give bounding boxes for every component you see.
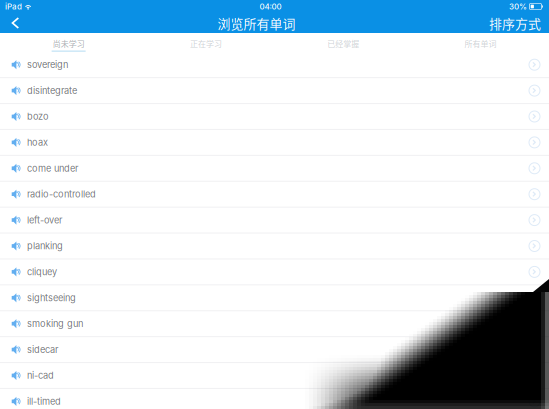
button[interactable]: Back [0, 13, 24, 33]
button[interactable]: Play radio-controlled [11, 182, 20, 207]
button[interactable]: 正在学习 [137, 33, 274, 52]
button[interactable]: Play sightseeing [11, 285, 20, 310]
staticText: disintegrate [27, 85, 77, 96]
staticText: cliquey [27, 266, 57, 277]
button[interactable]: bozo [0, 104, 549, 130]
button[interactable]: Play sidecar [11, 337, 20, 362]
button[interactable]: 所有单词 [412, 33, 549, 52]
button[interactable]: sovereign [0, 52, 549, 78]
button[interactable]: Play ill-timed [11, 389, 20, 409]
button[interactable]: come under [0, 156, 549, 182]
button[interactable]: radio-controlled [0, 182, 549, 208]
button[interactable]: Play sovereign [11, 52, 20, 77]
staticText: bozo [27, 111, 49, 122]
staticText: sidecar [27, 344, 58, 355]
staticText: ill-timed [27, 396, 61, 407]
button[interactable]: Play left-over [11, 208, 20, 233]
staticText: come under [27, 163, 78, 174]
button[interactable]: Play come under [11, 156, 20, 181]
button[interactable]: 已经掌握 [274, 33, 412, 52]
button[interactable]: Play planking [11, 234, 20, 258]
staticText: 尚未学习 [53, 38, 85, 49]
button[interactable]: 尚未学习 [0, 33, 137, 52]
button[interactable]: left-over [0, 208, 549, 234]
staticText: 已经掌握 [327, 38, 359, 49]
staticText: 正在学习 [190, 38, 222, 49]
button[interactable]: Play bozo [11, 104, 20, 129]
staticText: 浏览所有单词 [217, 14, 295, 32]
button[interactable]: Play ni-cad [11, 363, 20, 388]
staticText: radio-controlled [27, 189, 96, 200]
button[interactable]: Play hoax [11, 130, 20, 155]
button[interactable]: Play cliquey [11, 259, 20, 284]
staticText: left-over [27, 214, 62, 226]
staticText: ni-cad [27, 370, 54, 381]
button[interactable]: Play smoking gun [11, 311, 20, 336]
button[interactable]: ill-timed [0, 389, 549, 409]
button[interactable]: sightseeing [0, 285, 549, 311]
button[interactable]: ni-cad [0, 363, 549, 389]
staticText: hoax [27, 137, 48, 148]
staticText: 排序方式 [489, 14, 541, 32]
button[interactable]: disintegrate [0, 78, 549, 104]
staticText: planking [27, 240, 63, 251]
button[interactable]: sidecar [0, 337, 549, 363]
staticText: sightseeing [27, 292, 76, 303]
button[interactable]: cliquey [0, 259, 549, 285]
button[interactable]: planking [0, 234, 549, 259]
staticText: 所有单词 [464, 38, 496, 49]
button[interactable]: hoax [0, 130, 549, 156]
button[interactable]: smoking gun [0, 311, 549, 337]
staticText: 04:00 [259, 2, 281, 11]
button[interactable]: Play disintegrate [11, 78, 20, 103]
staticText: 30% [509, 2, 527, 11]
staticText: smoking gun [27, 318, 83, 329]
button[interactable]: 排序方式 [489, 14, 549, 32]
staticText: sovereign [27, 59, 68, 70]
staticText: iPad [5, 2, 22, 11]
